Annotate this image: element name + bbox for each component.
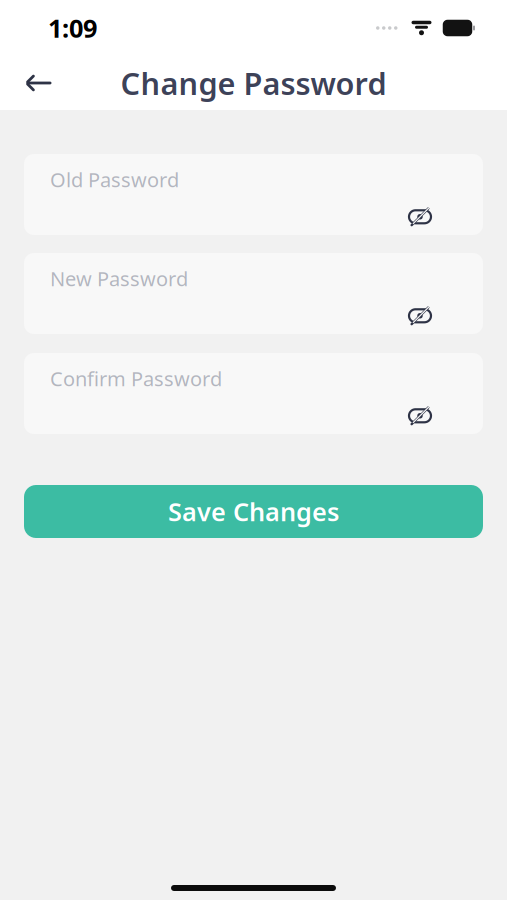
staticText: Confirm Password: [50, 365, 222, 392]
button[interactable]: Back: [16, 60, 62, 106]
staticText: Old Password: [50, 166, 179, 193]
staticText: Change Password: [120, 63, 386, 103]
button[interactable]: Show Old Password: [401, 201, 439, 233]
button[interactable]: Show New Password: [401, 300, 439, 332]
staticText: Save Changes: [168, 495, 339, 528]
button[interactable]: Save Changes: [24, 485, 483, 538]
button[interactable]: Show Confirm Password: [401, 400, 439, 432]
staticText: 1:09: [48, 11, 97, 45]
staticText: New Password: [50, 265, 188, 292]
